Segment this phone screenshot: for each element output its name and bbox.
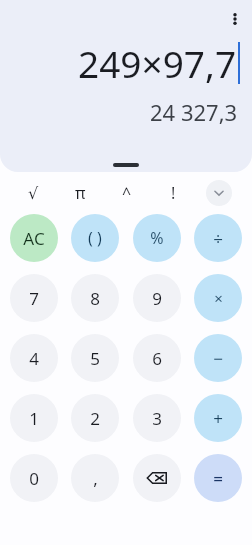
staticText: 6 <box>152 347 162 370</box>
staticText: AC <box>23 227 45 250</box>
button[interactable]: More options <box>222 6 248 32</box>
button[interactable]: √ <box>10 175 57 211</box>
staticText: π <box>75 182 86 204</box>
button[interactable]: % <box>133 214 181 262</box>
button[interactable]: AC <box>10 214 58 262</box>
button[interactable]: Backspace <box>133 454 181 502</box>
staticText: ! <box>171 182 176 204</box>
button[interactable]: × <box>194 274 242 322</box>
staticText: + <box>213 407 223 430</box>
button[interactable]: Expand history <box>113 163 139 167</box>
staticText: 4 <box>29 347 39 370</box>
button[interactable]: 0 <box>10 454 58 502</box>
button[interactable]: 8 <box>71 274 119 322</box>
button[interactable]: = <box>194 454 242 502</box>
staticText: 1 <box>29 407 39 430</box>
button[interactable]: , <box>71 454 119 502</box>
staticText: 8 <box>90 287 100 310</box>
staticText: 24 327,3 <box>150 97 238 127</box>
staticText: 249×97,7 <box>78 38 237 88</box>
button[interactable]: π <box>57 175 104 211</box>
button[interactable]: More functions <box>206 180 232 206</box>
button[interactable]: − <box>194 334 242 382</box>
staticText: 5 <box>90 347 100 370</box>
staticText: ( ) <box>88 227 102 249</box>
staticText: 7 <box>29 287 39 310</box>
staticText: 0 <box>29 467 39 490</box>
button[interactable]: 4 <box>10 334 58 382</box>
button[interactable]: ÷ <box>194 214 242 262</box>
staticText: , <box>93 467 98 490</box>
staticText: ÷ <box>213 227 223 250</box>
staticText: 3 <box>152 407 162 430</box>
staticText: = <box>213 467 223 490</box>
staticText: − <box>213 347 223 370</box>
staticText: % <box>150 227 164 249</box>
button[interactable]: 2 <box>71 394 119 442</box>
button[interactable]: 9 <box>133 274 181 322</box>
button[interactable]: ! <box>150 175 196 211</box>
button[interactable]: ( ) <box>71 214 119 262</box>
button[interactable]: 1 <box>10 394 58 442</box>
button[interactable]: + <box>194 394 242 442</box>
button[interactable]: ^ <box>104 175 150 211</box>
staticText: 2 <box>90 407 100 430</box>
staticText: √ <box>28 184 39 203</box>
button[interactable]: 5 <box>71 334 119 382</box>
button[interactable]: 7 <box>10 274 58 322</box>
staticText: × <box>214 288 223 308</box>
button[interactable]: 6 <box>133 334 181 382</box>
button[interactable]: 3 <box>133 394 181 442</box>
staticText: 9 <box>152 287 162 310</box>
staticText: ^ <box>122 182 132 204</box>
